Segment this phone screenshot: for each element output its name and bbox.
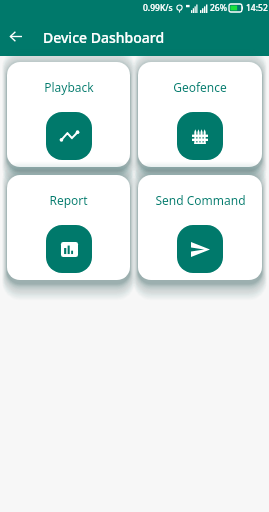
staticText: Playback — [44, 79, 94, 95]
button[interactable]: Send Command — [138, 175, 262, 280]
staticText: 26% — [210, 2, 227, 14]
staticText: Report — [49, 192, 88, 208]
button[interactable]: Report — [7, 175, 130, 280]
button[interactable]: Back — [0, 16, 32, 56]
staticText: 0.99K/s — [143, 2, 173, 14]
staticText: Geofence — [173, 79, 227, 95]
staticText: Send Command — [155, 192, 246, 208]
button[interactable]: Geofence — [138, 62, 262, 167]
button[interactable]: Playback — [7, 62, 130, 167]
staticText: Device Dashboard — [43, 28, 165, 47]
staticText: 14:52 — [246, 2, 268, 14]
